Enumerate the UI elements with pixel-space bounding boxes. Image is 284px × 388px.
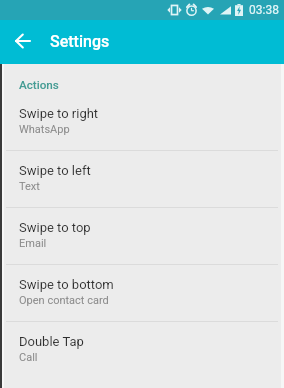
staticText: WhatsApp <box>19 123 70 136</box>
button[interactable]: Swipe to right <box>0 94 284 151</box>
staticText: Settings <box>50 32 110 51</box>
staticText: Swipe to bottom <box>19 277 114 292</box>
staticText: Text <box>19 180 40 193</box>
staticText: Actions <box>19 78 59 92</box>
staticText: Call <box>19 351 38 364</box>
button[interactable]: Swipe to left <box>0 151 284 208</box>
staticText: Swipe to top <box>19 220 91 235</box>
button[interactable]: Swipe to top <box>0 208 284 265</box>
button[interactable]: Swipe to bottom <box>0 265 284 322</box>
staticText: 03:38 <box>249 3 279 17</box>
staticText: Swipe to left <box>19 163 91 178</box>
button[interactable]: Double Tap <box>0 322 284 379</box>
staticText: Email <box>19 237 47 250</box>
staticText: Double Tap <box>19 334 84 349</box>
staticText: Swipe to right <box>19 106 99 121</box>
staticText: Open contact card <box>19 294 109 307</box>
button[interactable]: Back <box>8 28 36 56</box>
